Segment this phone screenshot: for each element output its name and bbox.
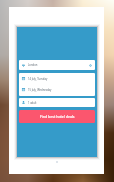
button[interactable]: 1 adult <box>19 98 95 107</box>
staticText: 14 July, Tuesday <box>28 77 48 81</box>
button[interactable]: London <box>19 60 95 70</box>
staticText: Find best hotel deals <box>40 114 75 119</box>
button[interactable]: 15 July, Wednesday <box>19 84 95 95</box>
button[interactable]: 14 July, Tuesday <box>19 73 95 84</box>
staticText: London <box>28 63 38 67</box>
staticText: 15 July, Wednesday <box>28 88 52 92</box>
staticText: 1 adult <box>28 101 37 105</box>
other: Use current location <box>89 64 92 67</box>
button[interactable]: Find best hotel deals <box>19 110 95 123</box>
